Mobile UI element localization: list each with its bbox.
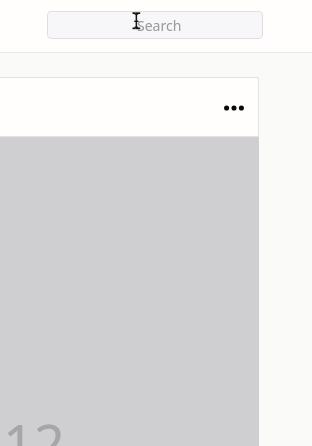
staticText: 12 — [3, 406, 65, 446]
button[interactable]: More options — [218, 92, 250, 124]
button[interactable]: Search — [47, 11, 263, 39]
button[interactable]: More options — [0, 77, 259, 446]
staticText: Search — [137, 16, 182, 35]
